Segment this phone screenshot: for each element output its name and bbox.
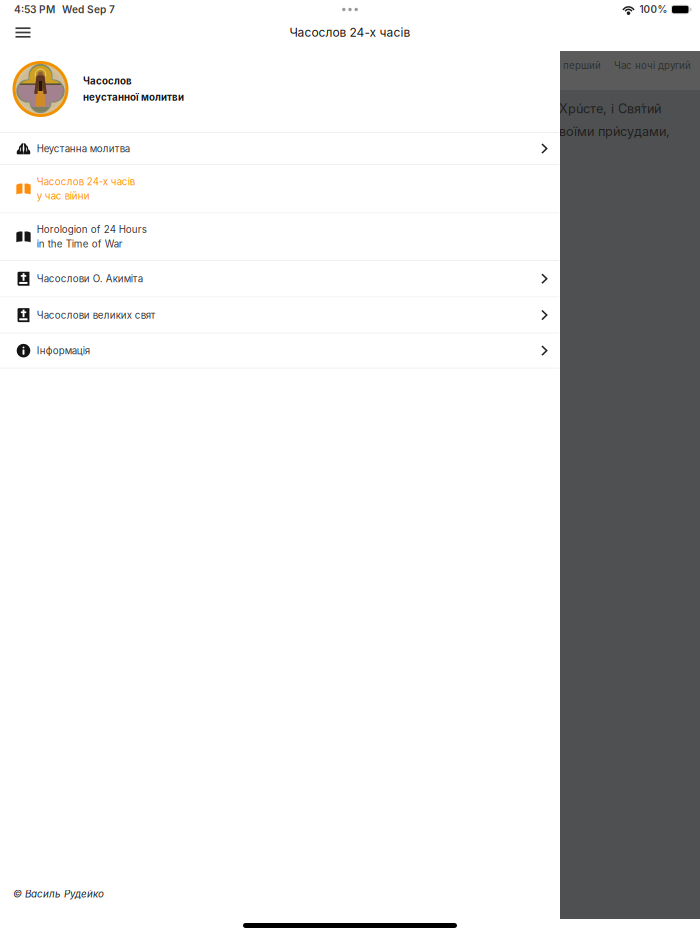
staticText: Хрúсте, і Свя́тий bbox=[559, 101, 661, 116]
staticText: in the Time of War bbox=[37, 238, 123, 250]
button[interactable]: Інформація bbox=[0, 334, 559, 368]
button[interactable]: Неустанна молитва bbox=[0, 133, 559, 164]
button[interactable]: Часослов 24-х часів bbox=[0, 165, 559, 212]
staticText: воїми при́судами, bbox=[559, 124, 670, 139]
staticText: Horologion of 24 Hours bbox=[37, 224, 147, 235]
button[interactable]: Show sidebar bbox=[7, 18, 39, 46]
staticText: неустанної молитви bbox=[83, 91, 184, 103]
staticText: Часослов 24-х часів bbox=[289, 25, 410, 40]
staticText: Неустанна молитва bbox=[37, 143, 130, 154]
staticText: © Василь Рудейко bbox=[13, 888, 104, 900]
staticText: Інформація bbox=[37, 345, 90, 357]
staticText: Час ночі другий bbox=[614, 59, 691, 71]
staticText: у час війни bbox=[37, 190, 90, 202]
button[interactable]: Часослови О. Акиміта bbox=[0, 261, 559, 296]
staticText: Wed Sep 7 bbox=[62, 3, 115, 16]
staticText: 100% bbox=[639, 3, 667, 15]
button[interactable]: Часослови великих свят bbox=[0, 297, 559, 333]
staticText: Часослови великих свят bbox=[37, 309, 156, 321]
staticText: і перший bbox=[558, 59, 601, 71]
staticText: Часослов 24-х часів bbox=[37, 176, 135, 188]
staticText: Часослов bbox=[83, 75, 132, 87]
button[interactable]: Horologion of 24 Hours bbox=[0, 213, 559, 260]
staticText: Часослови О. Акиміта bbox=[37, 273, 143, 285]
staticText: 4:53 PM bbox=[14, 3, 55, 16]
